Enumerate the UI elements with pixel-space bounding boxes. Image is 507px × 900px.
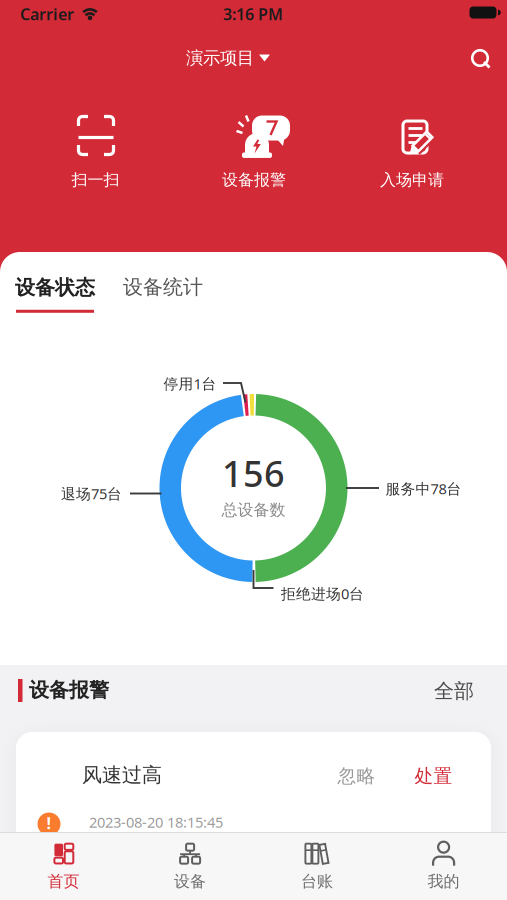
button[interactable]: 设备报警 [179, 91, 329, 201]
staticText: ! [46, 812, 51, 834]
staticText: 总设备数 [221, 500, 285, 520]
button[interactable]: Search [469, 47, 491, 69]
staticText: 2023-08-20 18:15:45 [89, 812, 223, 832]
staticText: 全部 [434, 679, 474, 703]
staticText: 演示项目 [186, 47, 254, 69]
staticText: 入场申请 [380, 170, 444, 190]
button[interactable]: 全部 [434, 679, 474, 703]
staticText: 设备状态 [15, 275, 95, 300]
button[interactable]: 台账 [262, 835, 372, 897]
staticText: Carrier [20, 3, 74, 25]
staticText: 首页 [47, 872, 79, 891]
staticText: 台账 [301, 872, 333, 891]
button[interactable]: 设备状态 [15, 275, 95, 313]
button[interactable]: 扫一扫 [25, 91, 165, 201]
staticText: 停用1台 [163, 374, 216, 393]
button[interactable]: 设备 [135, 835, 245, 897]
staticText: 设备统计 [123, 275, 203, 299]
staticText: 设备报警 [222, 170, 286, 190]
staticText: 忽略 [337, 764, 375, 787]
button[interactable]: 入场申请 [337, 91, 487, 201]
button[interactable]: 设备统计 [123, 275, 203, 299]
button[interactable]: 首页 [8, 835, 118, 897]
staticText: 退场75台 [61, 484, 122, 503]
staticText: 处置 [414, 764, 452, 787]
button[interactable]: 我的 [389, 835, 499, 897]
staticText: 设备报警 [29, 678, 109, 702]
staticText: 3:16 PM [223, 3, 283, 25]
staticText: 设备 [174, 872, 206, 891]
staticText: 156 [222, 449, 285, 497]
staticText: 我的 [428, 872, 460, 891]
button[interactable]: 处置 [403, 756, 463, 796]
button[interactable]: 演示项目 [186, 47, 270, 69]
staticText: 扫一扫 [71, 170, 119, 190]
button[interactable]: 忽略 [326, 756, 386, 796]
staticText: 服务中78台 [385, 479, 461, 498]
button[interactable]: 风速过高 [16, 737, 316, 837]
staticText: 拒绝进场0台 [281, 584, 364, 603]
staticText: 风速过高 [82, 763, 162, 787]
